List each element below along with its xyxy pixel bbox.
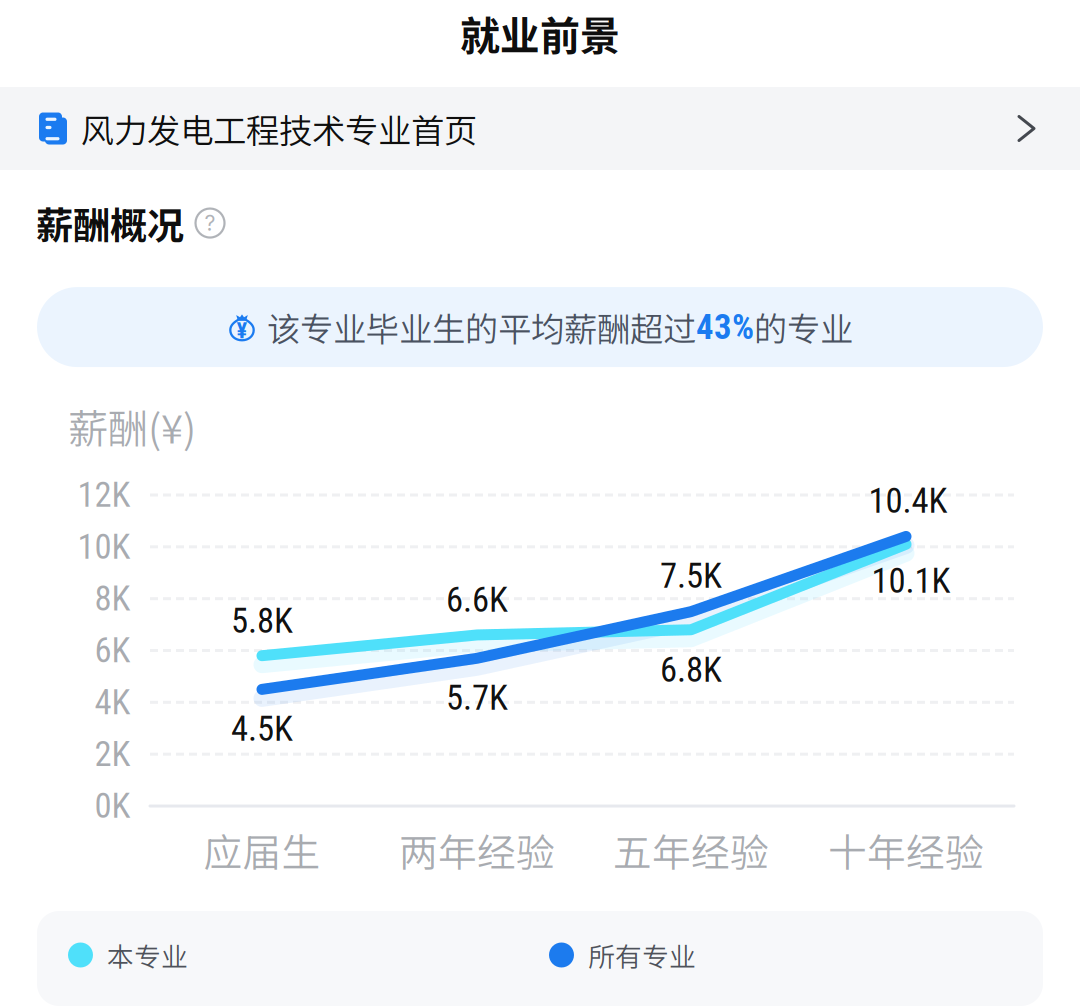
staticText: 0K (94, 786, 130, 826)
staticText: 6K (94, 630, 130, 671)
staticText: ¥ (236, 317, 247, 344)
staticText: 7.5K (660, 556, 722, 596)
staticText: 5.8K (231, 601, 293, 641)
staticText: 风力发电工程技术专业首页 (81, 104, 477, 153)
staticText: 本专业 (107, 936, 188, 974)
staticText: 2K (94, 734, 130, 774)
staticText: 应届生 (203, 822, 320, 878)
staticText: 8K (94, 578, 130, 619)
staticText: 五年经验 (613, 822, 769, 878)
staticText: 6.6K (446, 580, 508, 620)
staticText: 10.4K (868, 481, 947, 521)
staticText: ? (204, 210, 215, 236)
staticText: 的专业 (754, 303, 853, 351)
staticText: 12K (77, 475, 130, 515)
staticText: 所有专业 (588, 936, 696, 974)
button[interactable]: 风力发电工程技术专业首页 (0, 87, 1080, 170)
staticText: 薪酬(¥) (68, 397, 196, 455)
staticText: 10.1K (871, 561, 950, 601)
staticText: 就业前景 (460, 4, 620, 62)
staticText: 两年经验 (399, 822, 555, 878)
staticText: 4K (94, 682, 130, 723)
staticText: 薪酬概况 (36, 196, 184, 250)
staticText: 10K (77, 526, 130, 567)
staticText: 5.7K (446, 678, 508, 718)
staticText: 4.5K (231, 709, 293, 749)
staticText: 十年经验 (828, 822, 984, 878)
button[interactable]: About salary overview (195, 208, 225, 238)
staticText: 6.8K (660, 650, 722, 690)
staticText: 43% (696, 307, 754, 347)
staticText: 该专业毕业生的平均薪酬超过 (267, 303, 696, 351)
